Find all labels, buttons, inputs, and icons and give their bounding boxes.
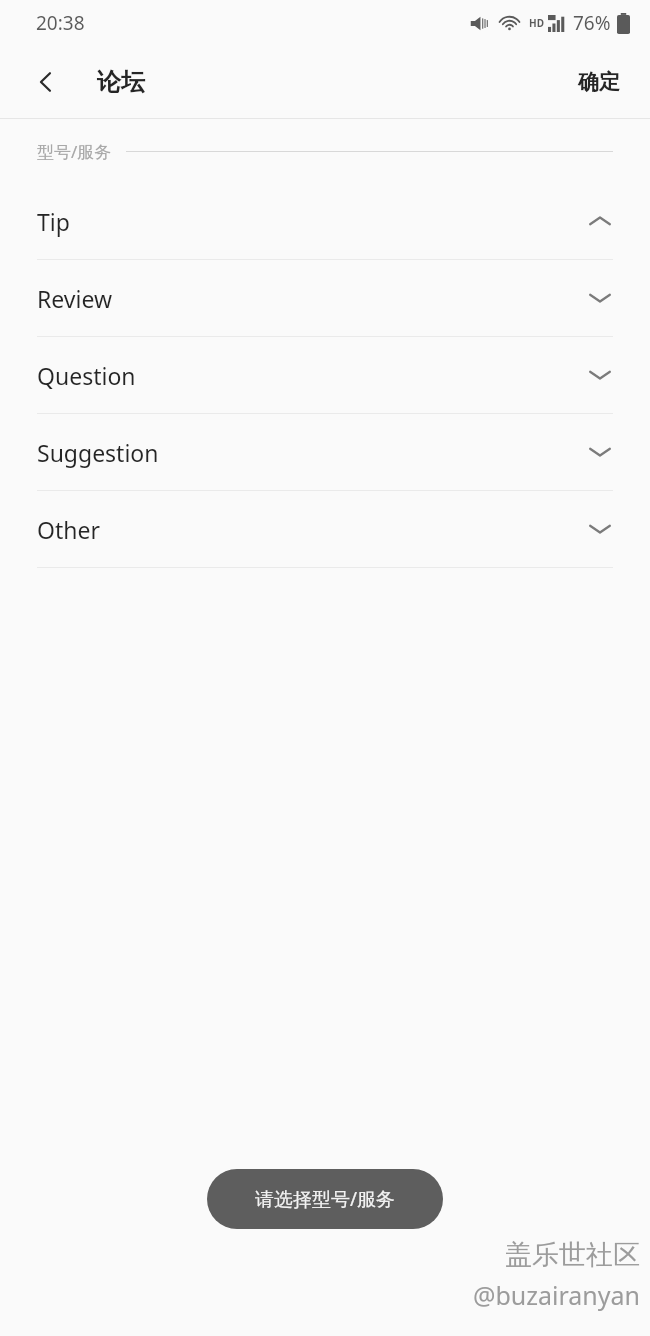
staticText: 请选择型号/服务	[255, 1186, 396, 1212]
staticText: 型号/服务	[37, 140, 112, 163]
staticText: @buzairanyan	[472, 1278, 640, 1312]
button[interactable]: Question	[0, 337, 650, 413]
button[interactable]: Other	[0, 491, 650, 567]
button[interactable]: Suggestion	[0, 414, 650, 490]
staticText: 盖乐世社区	[505, 1238, 640, 1272]
staticText: Tip	[37, 206, 70, 237]
staticText: HD	[529, 16, 544, 30]
staticText: 论坛	[97, 67, 145, 97]
staticText: Review	[37, 283, 113, 314]
button[interactable]: 请选择型号/服务	[207, 1169, 443, 1229]
staticText: 确定	[578, 69, 620, 95]
button[interactable]: Back	[22, 58, 70, 106]
staticText: 20:38	[36, 10, 85, 36]
button[interactable]: Tip	[0, 183, 650, 259]
staticText: Suggestion	[37, 437, 159, 468]
button[interactable]: 确定	[570, 61, 628, 103]
staticText: Other	[37, 514, 100, 545]
staticText: 76%	[573, 10, 611, 36]
staticText: Question	[37, 360, 136, 391]
button[interactable]: Review	[0, 260, 650, 336]
